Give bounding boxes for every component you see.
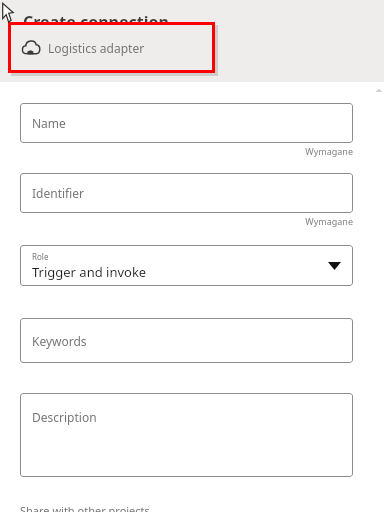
staticText: Identifier	[32, 185, 85, 201]
staticText: Create connection	[23, 11, 169, 33]
button[interactable]: Logistics adapter	[8, 22, 215, 73]
button[interactable]: Name	[20, 103, 353, 143]
staticText: Keywords	[32, 333, 87, 349]
button[interactable]: Scroll up	[374, 86, 384, 94]
button[interactable]: Role	[20, 245, 353, 286]
button[interactable]: Keywords	[20, 318, 353, 363]
staticText: Description	[32, 409, 97, 425]
staticText: Name	[32, 115, 66, 131]
staticText: Role	[32, 251, 49, 262]
staticText: Wymagane	[305, 145, 353, 157]
staticText: Trigger and invoke	[32, 263, 147, 281]
button[interactable]: Description	[20, 393, 353, 477]
staticText: Share with other projects	[20, 503, 150, 512]
staticText: Logistics adapter	[48, 40, 145, 56]
staticText: Wymagane	[305, 215, 353, 227]
button[interactable]: Identifier	[20, 173, 353, 213]
